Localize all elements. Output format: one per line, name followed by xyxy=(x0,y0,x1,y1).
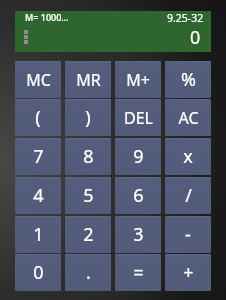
staticText: 1 xyxy=(33,222,44,247)
button[interactable]: ( xyxy=(15,99,61,136)
button[interactable]: x xyxy=(165,138,211,175)
staticText: / xyxy=(185,183,192,208)
button[interactable]: M+ xyxy=(115,61,161,98)
button[interactable]: 9 xyxy=(115,138,161,175)
staticText: DEL xyxy=(124,107,153,129)
button[interactable]: 5 xyxy=(65,177,111,214)
staticText: 7 xyxy=(33,144,44,169)
staticText: 5 xyxy=(83,183,94,208)
staticText: x xyxy=(183,144,193,169)
button[interactable]: 3 xyxy=(115,216,161,253)
button[interactable]: - xyxy=(165,216,211,253)
button[interactable]: MR xyxy=(65,61,111,98)
staticText: 0 xyxy=(33,260,44,285)
button[interactable]: 1 xyxy=(15,216,61,253)
staticText: MC xyxy=(26,69,51,91)
staticText: ) xyxy=(85,105,91,130)
staticText: 9.25-32 xyxy=(167,11,204,25)
staticText: - xyxy=(185,222,191,247)
staticText: M= 1000… xyxy=(25,11,69,23)
button[interactable]: MC xyxy=(15,61,61,98)
button[interactable]: 4 xyxy=(15,177,61,214)
staticText: 4 xyxy=(33,183,44,208)
staticText: + xyxy=(183,260,194,285)
staticText: 6 xyxy=(133,183,144,208)
button[interactable]: 6 xyxy=(115,177,161,214)
button[interactable]: 8 xyxy=(65,138,111,175)
staticText: 9 xyxy=(133,144,144,169)
staticText: ( xyxy=(35,105,41,130)
staticText: . xyxy=(86,260,91,285)
staticText: = xyxy=(133,260,144,285)
button[interactable]: / xyxy=(165,177,211,214)
button[interactable]: 2 xyxy=(65,216,111,253)
button[interactable]: + xyxy=(165,254,211,291)
staticText: % xyxy=(181,67,196,92)
button[interactable]: . xyxy=(65,254,111,291)
staticText: M+ xyxy=(126,69,150,91)
staticText: 3 xyxy=(133,222,144,247)
staticText: MR xyxy=(76,69,101,91)
button[interactable]: ) xyxy=(65,99,111,136)
staticText: 8 xyxy=(83,144,94,169)
button[interactable]: % xyxy=(165,61,211,98)
button[interactable]: AC xyxy=(165,99,211,136)
staticText: 0 xyxy=(190,25,201,50)
staticText: AC xyxy=(178,107,199,129)
button[interactable]: 0 xyxy=(15,254,61,291)
button[interactable]: DEL xyxy=(115,99,161,136)
button[interactable]: More options xyxy=(24,30,28,44)
button[interactable]: = xyxy=(115,254,161,291)
staticText: 2 xyxy=(83,222,94,247)
button[interactable]: 7 xyxy=(15,138,61,175)
